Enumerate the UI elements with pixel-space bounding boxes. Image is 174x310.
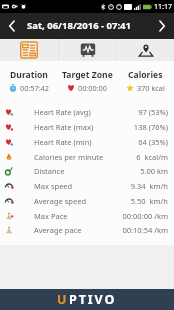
staticText: 5.50 km/h: [130, 196, 168, 206]
staticText: Heart Rate (min): [34, 137, 92, 147]
button[interactable]: Heart Rate (avg): [0, 104, 174, 119]
button[interactable]: Heart Rate (min): [0, 134, 174, 149]
button[interactable]: Distance: [0, 163, 174, 178]
staticText: 97 (53%): [138, 107, 168, 117]
button[interactable]: Max speed: [0, 178, 174, 193]
staticText: Heart Rate (max): [34, 122, 94, 132]
staticText: Average speed: [34, 196, 87, 206]
button[interactable]: Next day: [150, 13, 174, 39]
button[interactable]: Average pace: [0, 222, 174, 237]
button[interactable]: Summary tab: [0, 39, 58, 61]
staticText: Sat, 06/18/2016 - 07:41: [27, 19, 150, 32]
button[interactable]: Previous day: [0, 13, 24, 39]
staticText: Distance: [34, 166, 65, 176]
staticText: Target Zone: [62, 69, 113, 81]
staticText: Calories per minute: [34, 152, 104, 162]
button[interactable]: Duration: [0, 69, 58, 93]
button[interactable]: Target Zone: [58, 69, 116, 93]
button[interactable]: Heart Rate (max): [0, 119, 174, 134]
staticText: 6 kcal/m: [136, 152, 168, 162]
button[interactable]: Calories: [116, 69, 174, 93]
button[interactable]: Max Pace: [0, 208, 174, 223]
staticText: Average pace: [34, 225, 82, 235]
staticText: 138 (76%): [133, 122, 168, 132]
staticText: 00:00:00: [78, 83, 107, 93]
staticText: Heart Rate (avg): [34, 107, 91, 117]
staticText: Max Pace: [34, 211, 68, 221]
staticText: Duration: [10, 69, 48, 81]
staticText: Calories: [128, 69, 163, 81]
staticText: 5.00 km: [140, 166, 168, 176]
staticText: 64 (35%): [138, 137, 168, 147]
staticText: 00:57:42: [20, 83, 49, 93]
button[interactable]: Calories per minute: [0, 149, 174, 164]
staticText: 9.34 km/h: [130, 181, 168, 191]
button[interactable]: Map tab: [117, 39, 174, 61]
staticText: 00:00:00 /km: [122, 211, 168, 221]
staticText: 11:17: [154, 2, 172, 12]
staticText: PTIVO: [69, 291, 117, 308]
staticText: 00:10:54 /km: [122, 225, 168, 235]
staticText: Max speed: [34, 181, 73, 191]
staticText: 370 kcal: [137, 83, 165, 93]
button[interactable]: Chart tab: [59, 39, 116, 61]
button[interactable]: Average speed: [0, 193, 174, 208]
staticText: U: [57, 291, 69, 308]
